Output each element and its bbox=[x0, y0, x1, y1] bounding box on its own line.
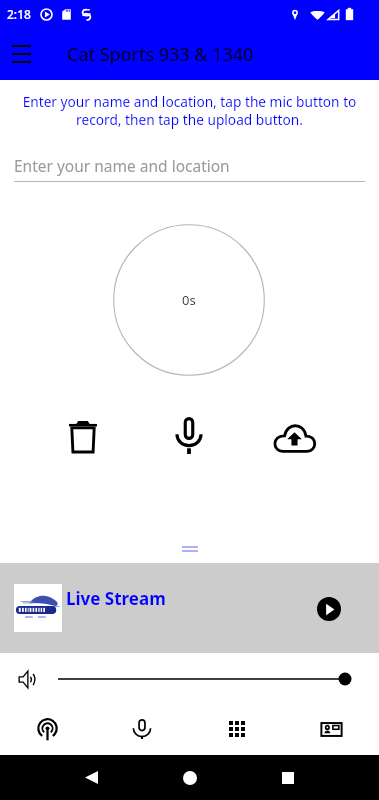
button[interactable]: Delete recording bbox=[59, 412, 107, 460]
button[interactable]: Contact bbox=[284, 706, 379, 752]
staticText: 0s bbox=[182, 291, 196, 309]
button[interactable]: Microphone bbox=[94, 706, 189, 752]
button[interactable]: Record bbox=[165, 411, 213, 459]
button[interactable]: Play live stream bbox=[317, 597, 341, 621]
button[interactable]: Menu bbox=[1, 34, 41, 74]
staticText: Live Stream bbox=[66, 587, 166, 610]
staticText: Enter your name and location bbox=[14, 155, 230, 176]
button[interactable]: Upload bbox=[270, 412, 318, 460]
other: Volume bbox=[13, 665, 41, 693]
staticText: Cat Sports 933 & 1340 bbox=[67, 42, 254, 67]
button[interactable]: Live Stream bbox=[0, 563, 379, 653]
button[interactable]: Radio bbox=[0, 706, 94, 752]
button[interactable]: Apps bbox=[189, 706, 284, 752]
staticText: Enter your name and location, tap the mi… bbox=[16, 92, 363, 129]
staticText: 2:18 bbox=[7, 6, 31, 22]
